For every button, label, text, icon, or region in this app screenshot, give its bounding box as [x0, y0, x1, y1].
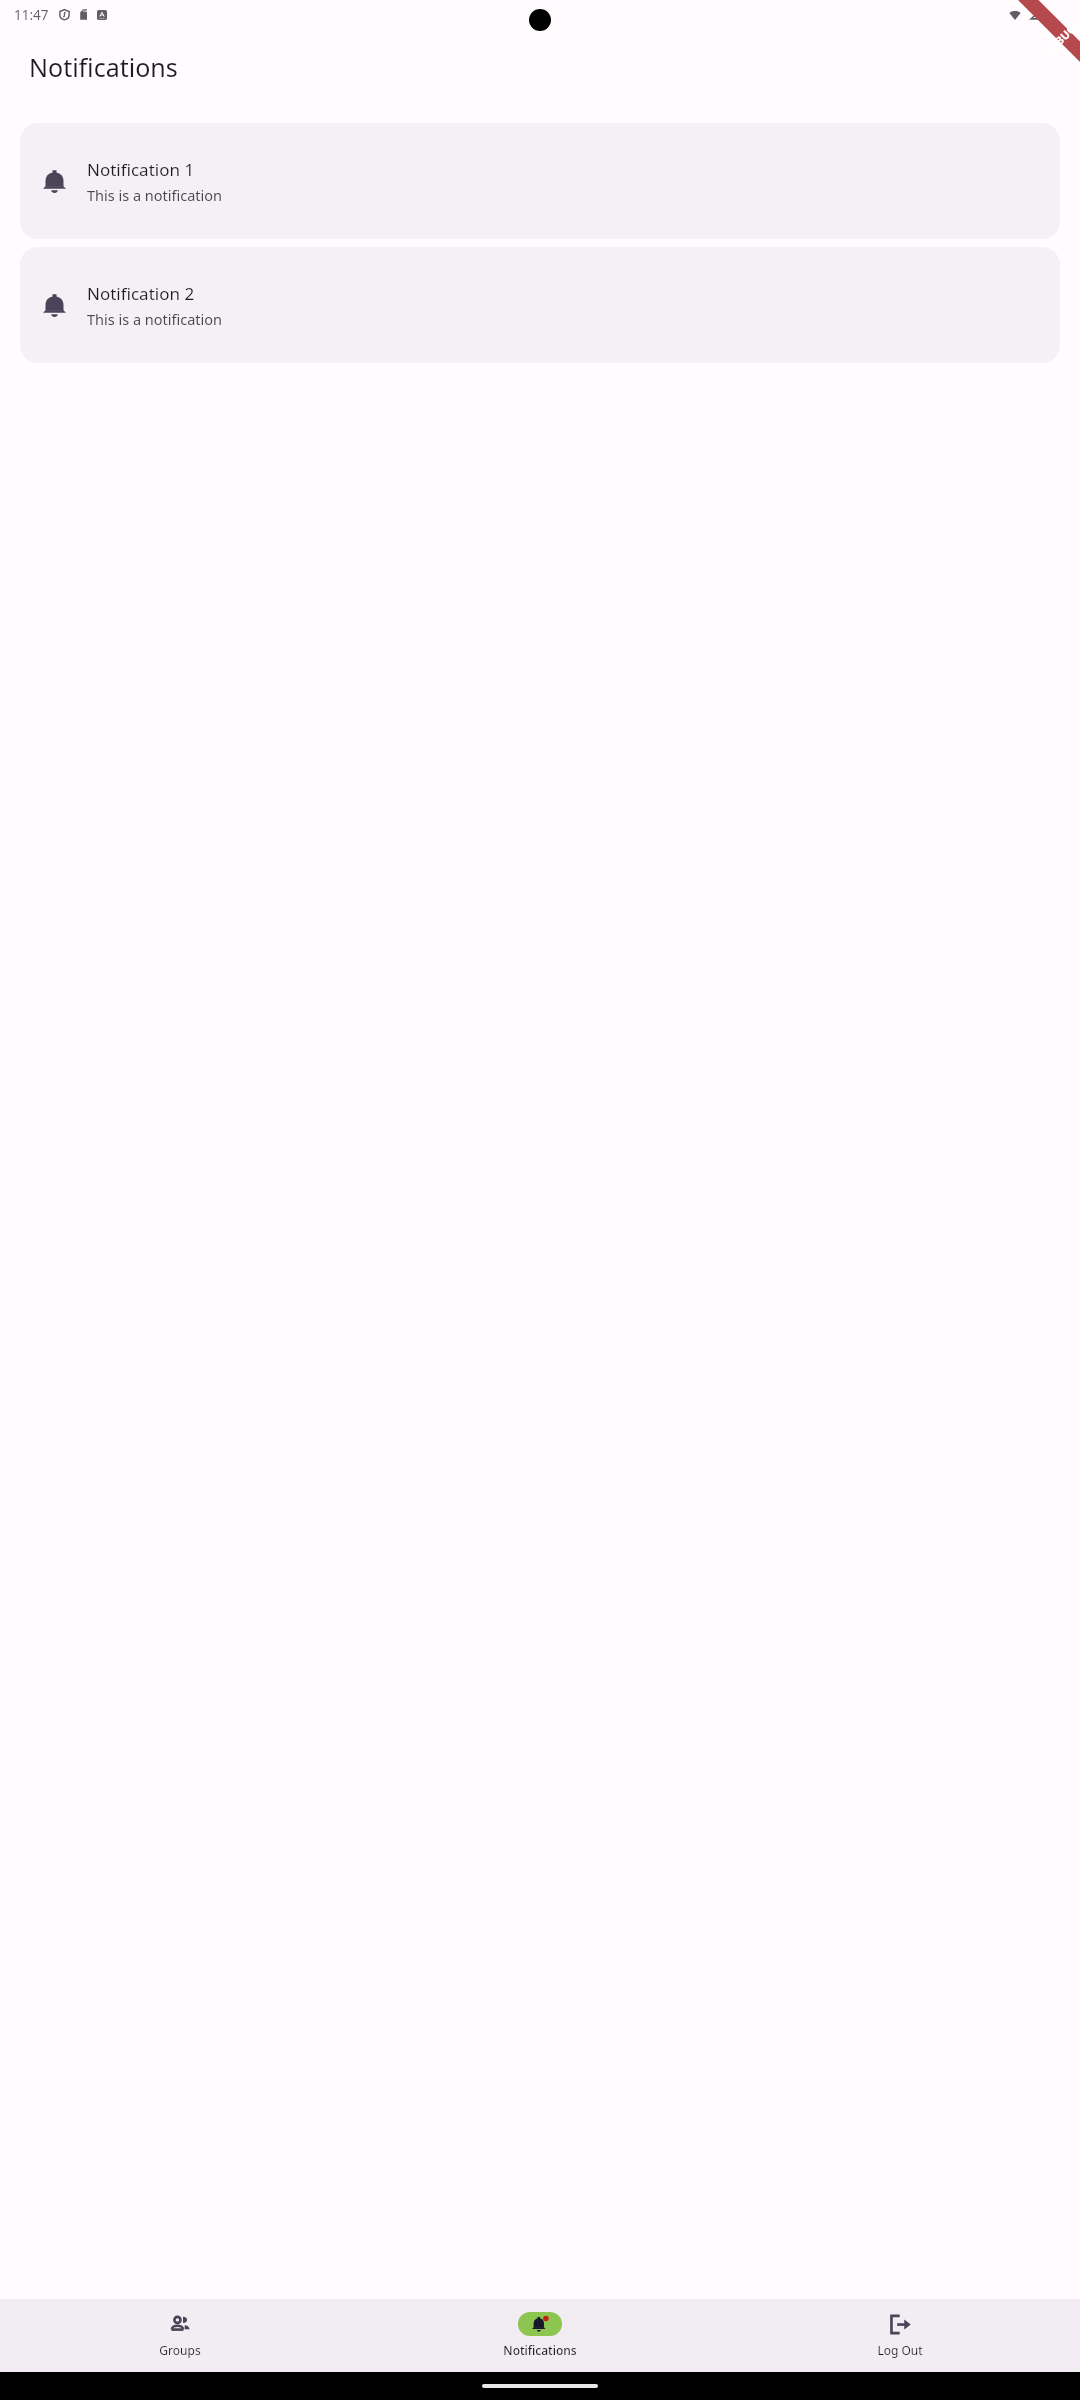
staticText: Groups: [159, 2342, 201, 2358]
staticText: Notifications: [29, 50, 178, 84]
button[interactable]: Notifications: [360, 2303, 720, 2368]
button[interactable]: Notification 2: [20, 247, 1060, 363]
staticText: This is a notification: [87, 309, 223, 329]
staticText: 11:47: [14, 6, 49, 24]
staticText: Log Out: [877, 2342, 923, 2358]
button[interactable]: Groups: [0, 2303, 360, 2368]
staticText: DEBUG: [1041, 21, 1079, 58]
button[interactable]: Log Out: [720, 2303, 1080, 2368]
staticText: Notification 1: [87, 158, 195, 181]
staticText: Notifications: [503, 2342, 577, 2358]
button[interactable]: Notification 1: [20, 123, 1060, 239]
staticText: Notification 2: [87, 282, 195, 305]
staticText: This is a notification: [87, 185, 223, 205]
